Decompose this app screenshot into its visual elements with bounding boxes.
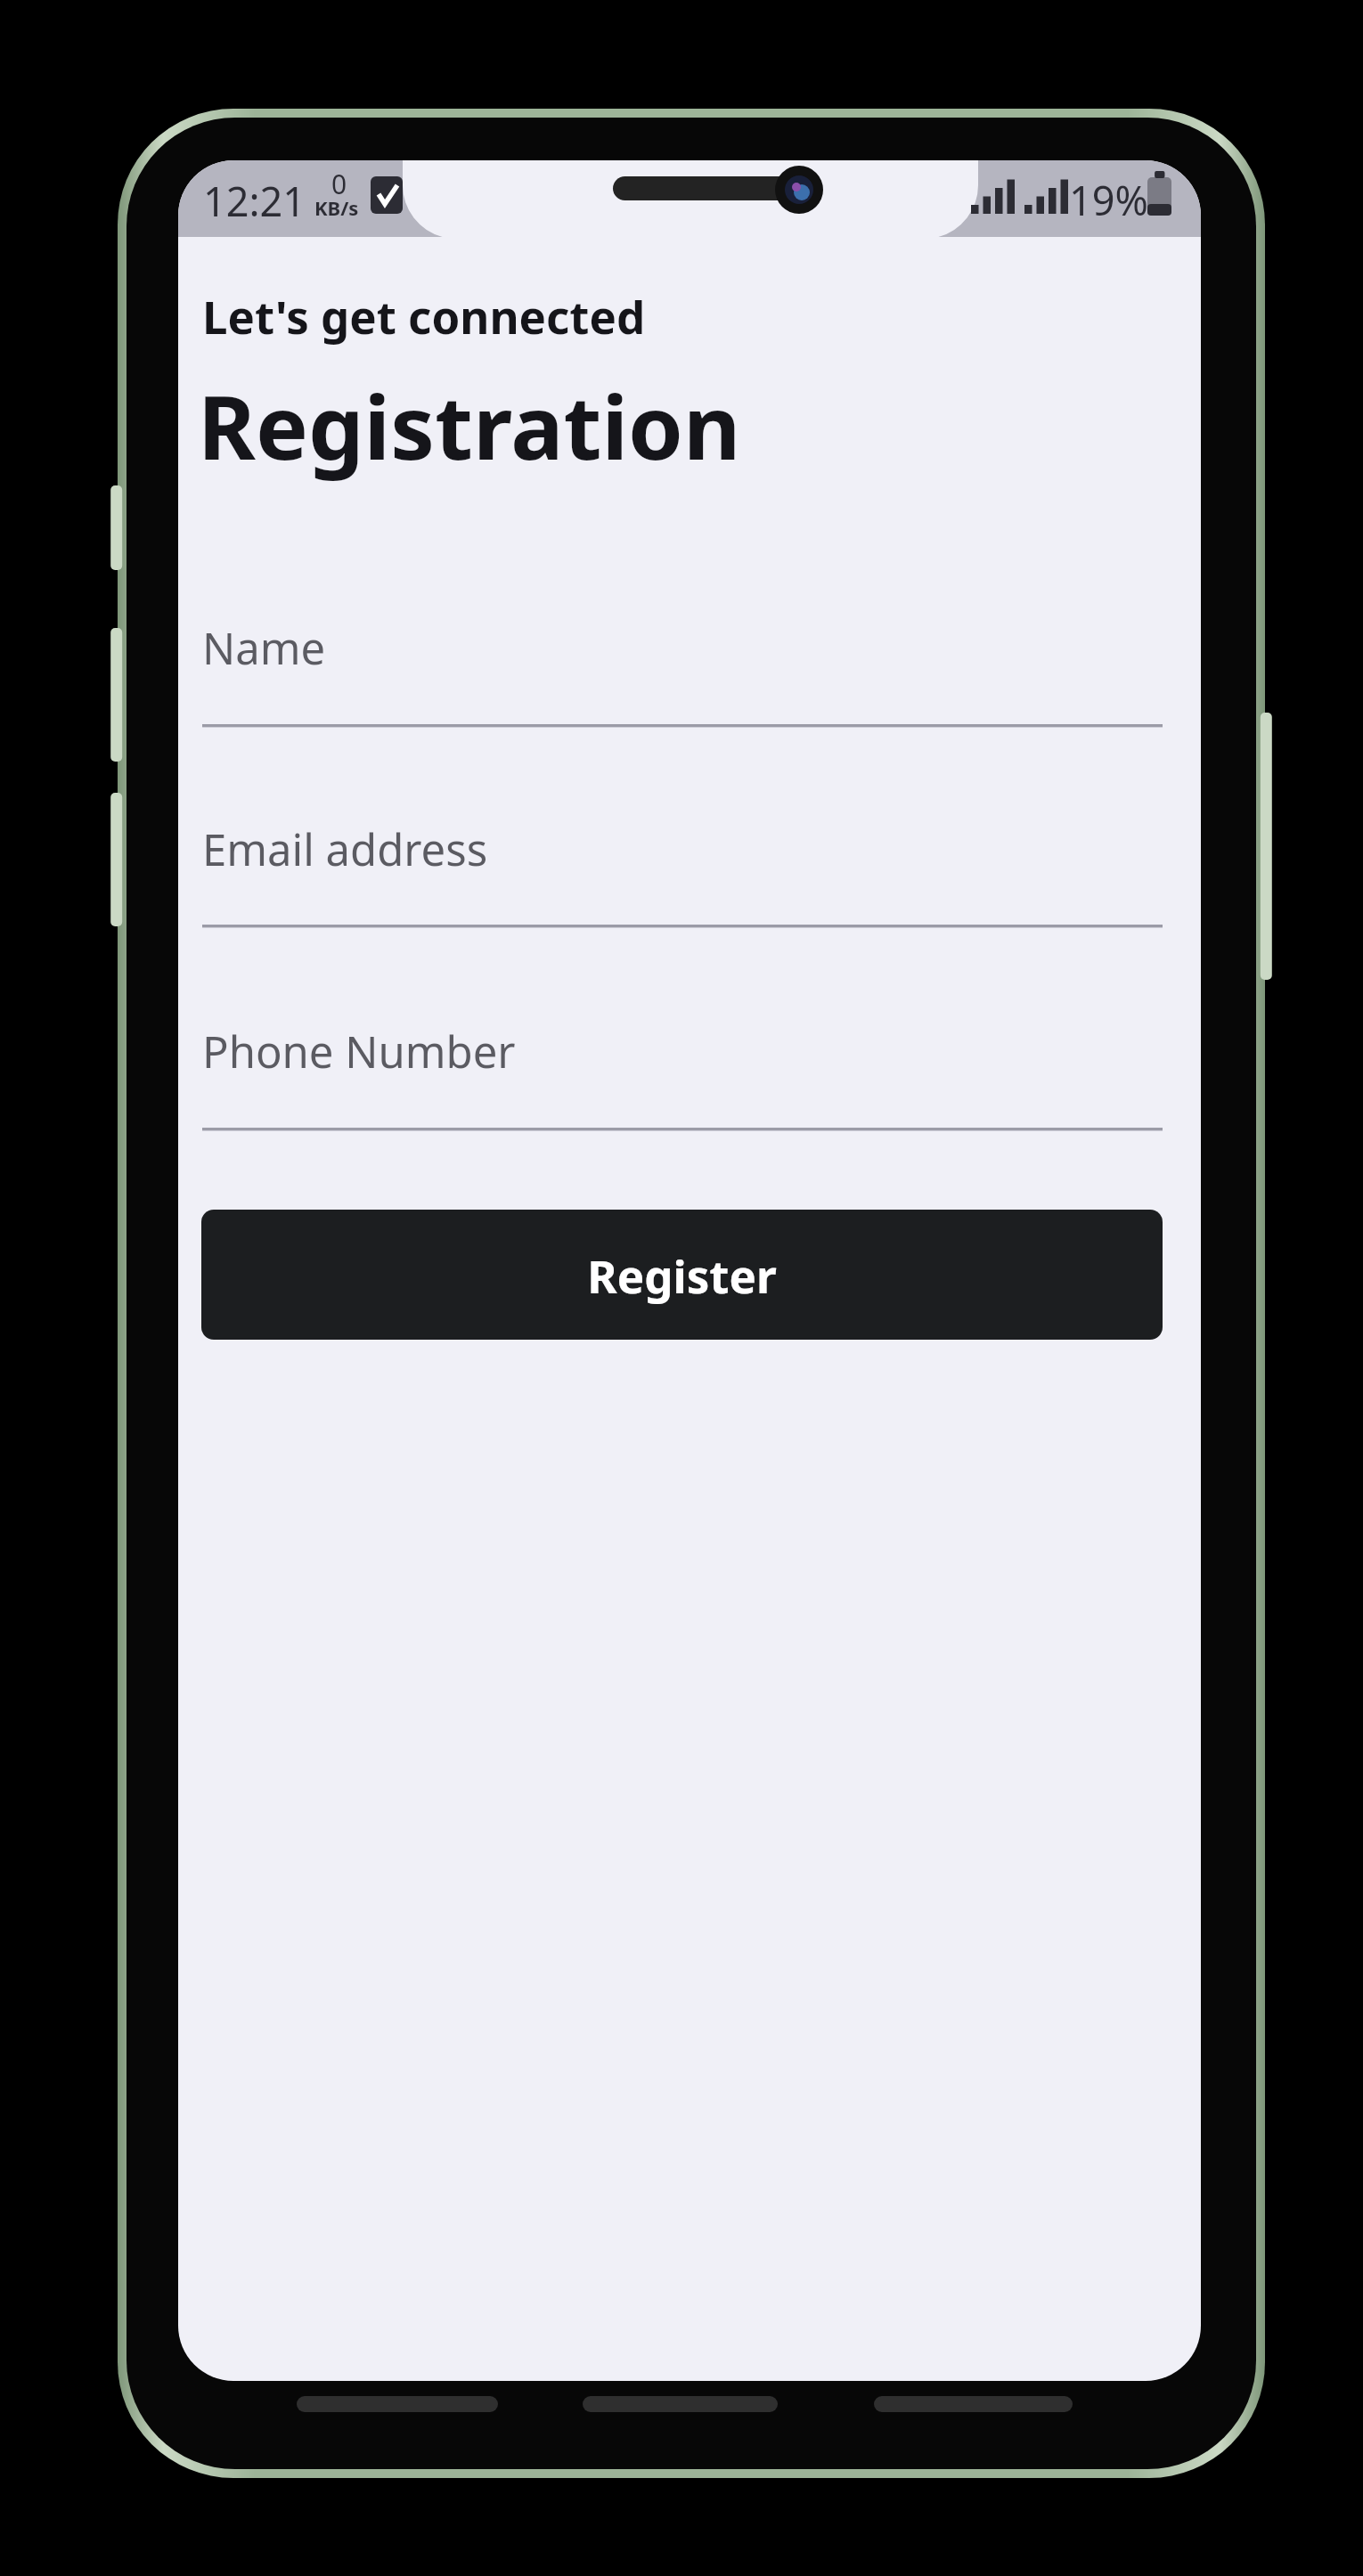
staticText: Name	[202, 618, 326, 678]
button[interactable]: Name	[202, 579, 1163, 728]
staticText: 12:21	[203, 174, 306, 228]
staticText: Register	[587, 1244, 777, 1306]
staticText: Registration	[198, 365, 741, 485]
button[interactable]: Phone Number	[202, 982, 1163, 1131]
staticText: Let's get connected	[202, 285, 646, 346]
staticText: KB/s	[314, 194, 359, 221]
button[interactable]: Email address	[202, 780, 1163, 928]
staticText: Email address	[202, 819, 488, 879]
staticText: Phone Number	[202, 1022, 516, 1081]
staticText: 19%	[1069, 173, 1148, 227]
button[interactable]: Register	[201, 1210, 1163, 1340]
staticText: 0	[331, 166, 347, 202]
